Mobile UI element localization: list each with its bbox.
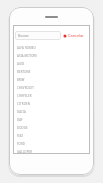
staticText: CHEVROLET: [17, 86, 34, 90]
button[interactable]: CITROEN: [13, 100, 90, 108]
staticText: BMW: [17, 78, 25, 82]
staticText: DODGE: [17, 126, 28, 130]
button[interactable]: FORD: [13, 140, 90, 148]
staticText: CITROEN: [17, 102, 30, 106]
staticText: ALFA ROMEO: [17, 46, 36, 50]
button[interactable]: FIAT: [13, 132, 90, 140]
staticText: ASIA MOTORS: [17, 54, 38, 58]
staticText: BERTONE: [17, 70, 31, 74]
other: Clear search: [63, 34, 67, 38]
staticText: DACIA: [17, 110, 26, 114]
staticText: AUDI: [17, 62, 25, 66]
button[interactable]: BMW: [13, 76, 90, 84]
staticText: GALLOPER: [17, 150, 33, 154]
button[interactable]: GALLOPER: [13, 148, 90, 156]
button[interactable]: CHRYSLER: [13, 92, 90, 100]
button[interactable]: DODGE: [13, 124, 90, 132]
staticText: CHRYSLER: [17, 94, 32, 98]
button[interactable]: Buscar: [15, 31, 61, 40]
staticText: FORD: [17, 142, 26, 146]
staticText: Cancelar: [68, 33, 84, 38]
button[interactable]: BERTONE: [13, 68, 90, 76]
staticText: FIAT: [17, 134, 24, 138]
staticText: Buscar: [18, 33, 29, 38]
staticText: DAF: [17, 118, 23, 122]
button[interactable]: DAF: [13, 116, 90, 124]
button[interactable]: Clear search: [63, 31, 84, 40]
button[interactable]: CHEVROLET: [13, 84, 90, 92]
button[interactable]: ALFA ROMEO: [13, 44, 90, 52]
button[interactable]: DACIA: [13, 108, 90, 116]
button[interactable]: ASIA MOTORS: [13, 52, 90, 60]
button[interactable]: AUDI: [13, 60, 90, 68]
